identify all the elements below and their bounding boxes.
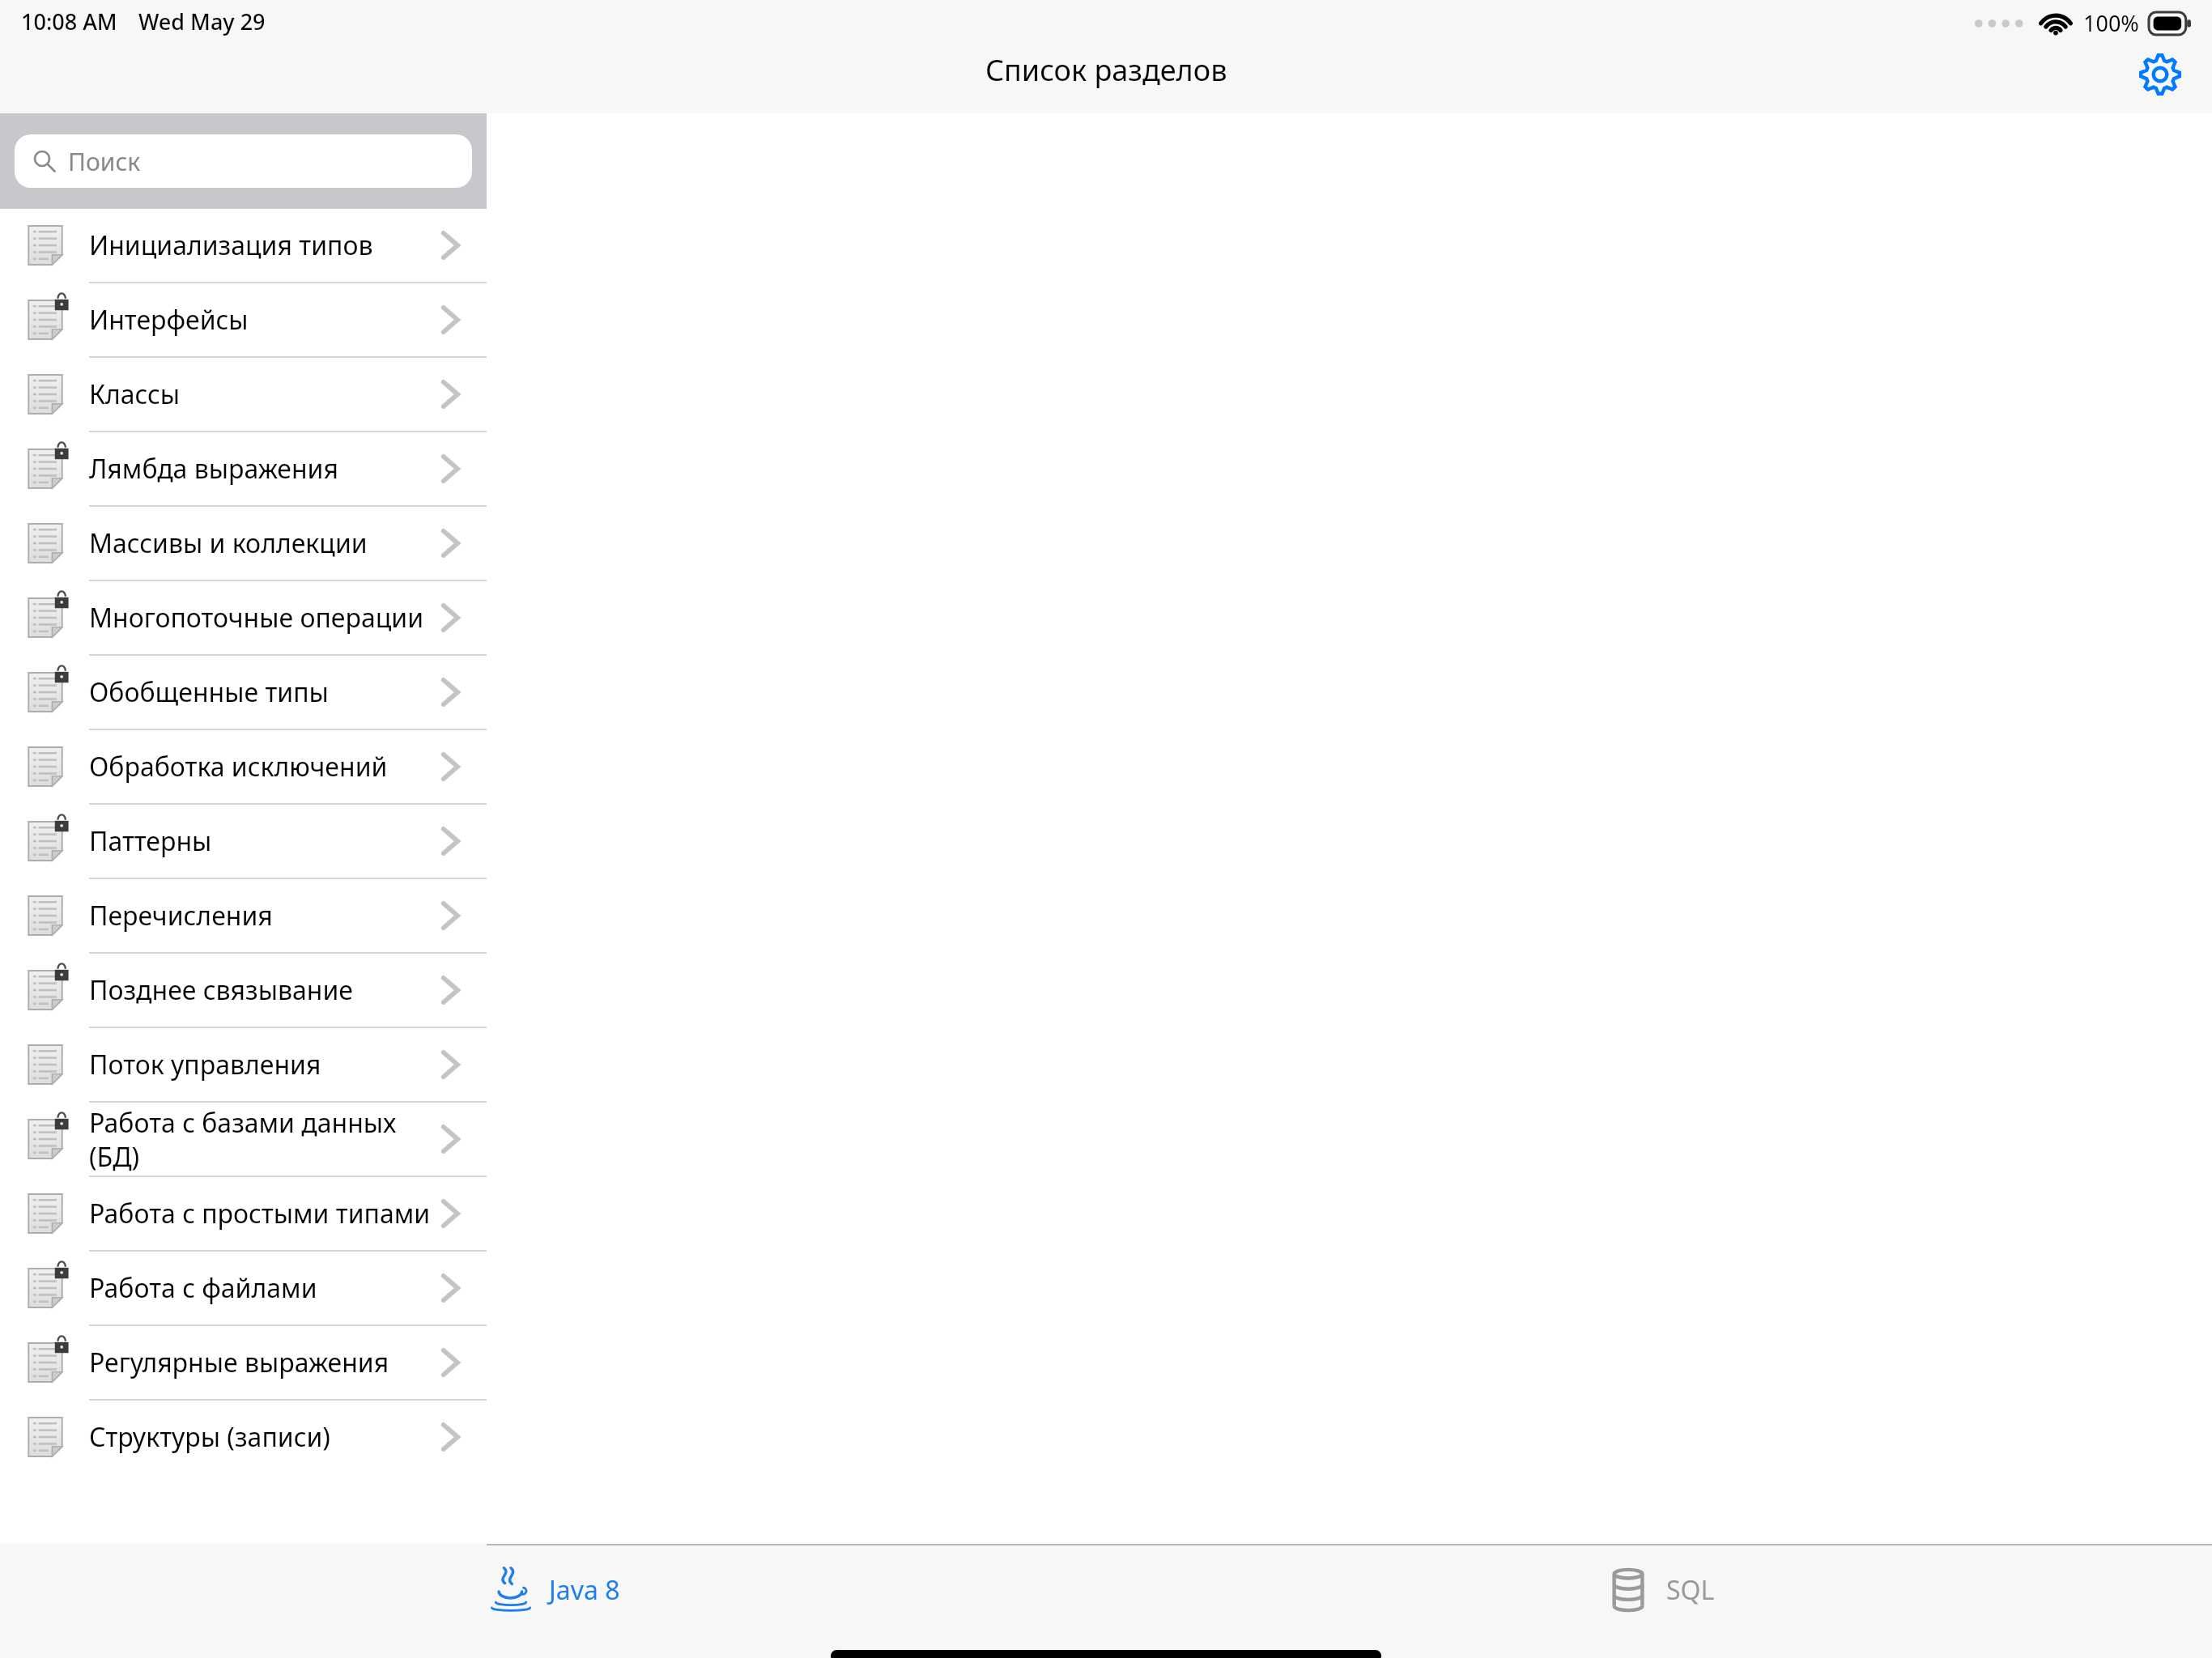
button[interactable]: Работа с простыми типами — [0, 1177, 487, 1250]
staticText: Список разделов — [985, 50, 1227, 90]
staticText: Работа с простыми типами — [89, 1196, 432, 1231]
staticText: Классы — [89, 376, 432, 412]
staticText: Многопоточные операции — [89, 600, 432, 636]
button[interactable]: Массивы и коллекции — [0, 507, 487, 580]
button[interactable]: SQL — [1106, 1545, 2212, 1635]
staticText: Работа с файлами — [89, 1270, 432, 1306]
button[interactable]: Структуры (записи) — [0, 1401, 487, 1473]
button[interactable]: Интерфейсы — [0, 283, 487, 356]
staticText: Wed May 29 — [138, 6, 266, 36]
button[interactable]: Регулярные выражения — [0, 1326, 487, 1399]
staticText: Работа с базами данных (БД) — [89, 1105, 432, 1174]
staticText: Позднее связывание — [89, 972, 432, 1008]
staticText: Обработка исключений — [89, 749, 432, 784]
staticText: Java 8 — [549, 1572, 620, 1608]
staticText: Обобщенные типы — [89, 674, 432, 710]
button[interactable]: Многопоточные операции — [0, 581, 487, 654]
staticText: 10:08 AM — [21, 6, 117, 36]
staticText: Регулярные выражения — [89, 1345, 432, 1380]
button[interactable]: Классы — [0, 358, 487, 431]
button[interactable]: Перечисления — [0, 879, 487, 952]
button[interactable]: Обработка исключений — [0, 730, 487, 803]
button[interactable]: Позднее связывание — [0, 954, 487, 1027]
staticText: SQL — [1666, 1572, 1715, 1608]
button[interactable]: Java 8 — [0, 1545, 1106, 1635]
button[interactable]: Инициализация типов — [0, 209, 487, 282]
staticText: Паттерны — [89, 823, 432, 859]
button[interactable]: Settings — [2129, 44, 2191, 105]
button[interactable]: Поиск — [15, 134, 472, 188]
staticText: Интерфейсы — [89, 302, 432, 338]
staticText: Перечисления — [89, 898, 432, 933]
staticText: Структуры (записи) — [89, 1419, 432, 1455]
staticText: Инициализация типов — [89, 227, 432, 263]
button[interactable]: Работа с базами данных (БД) — [0, 1103, 487, 1175]
staticText: Лямбда выражения — [89, 451, 432, 487]
button[interactable]: Обобщенные типы — [0, 656, 487, 729]
button[interactable]: Работа с файлами — [0, 1252, 487, 1324]
staticText: 100% — [2083, 8, 2139, 38]
button[interactable]: Паттерны — [0, 805, 487, 878]
button[interactable]: Лямбда выражения — [0, 432, 487, 505]
staticText: Поток управления — [89, 1047, 432, 1082]
button[interactable]: Поток управления — [0, 1028, 487, 1101]
staticText: Массивы и коллекции — [89, 525, 432, 561]
staticText: Поиск — [68, 145, 141, 178]
